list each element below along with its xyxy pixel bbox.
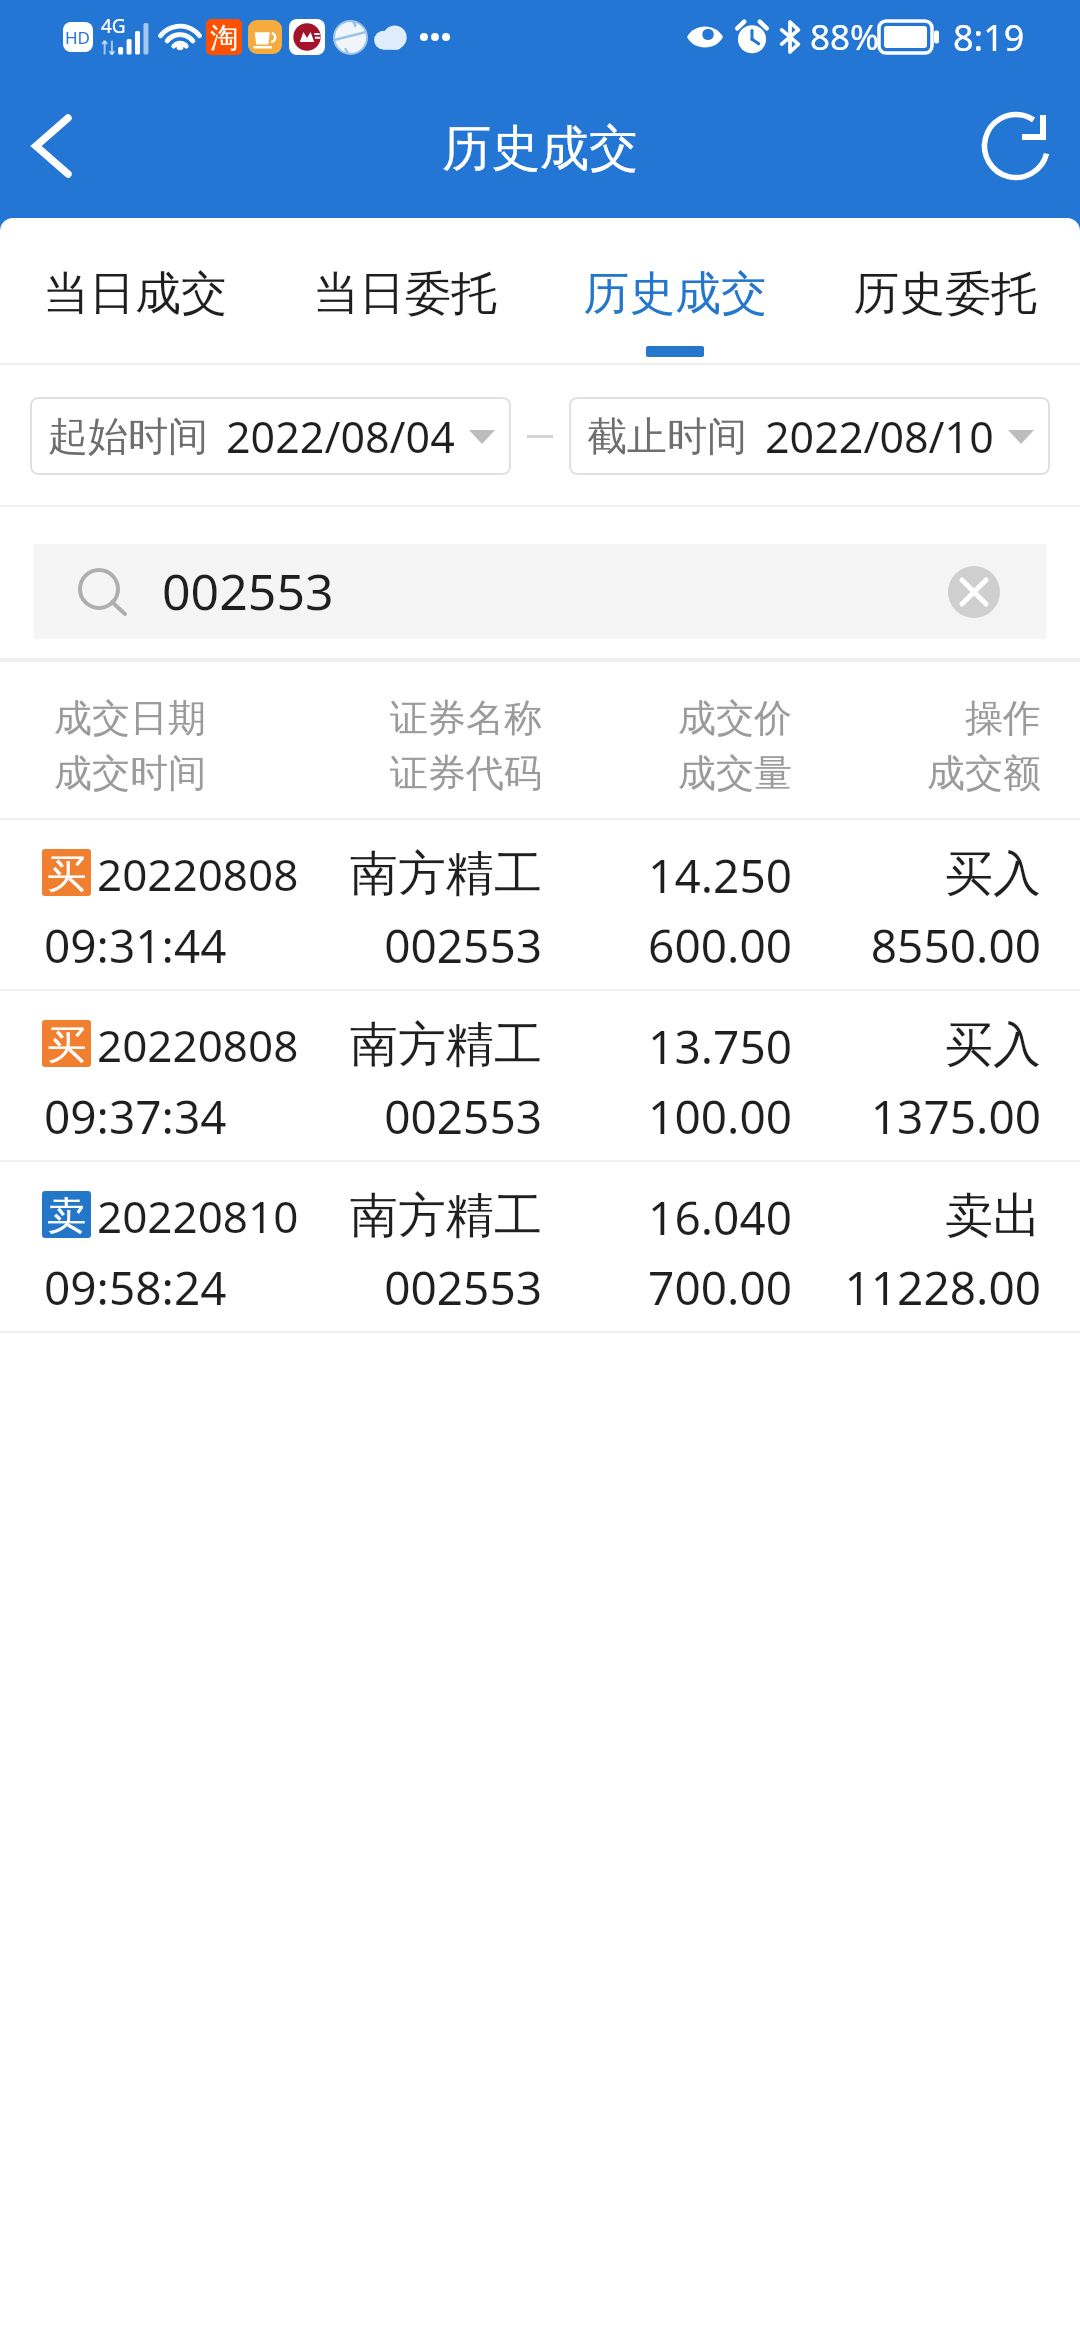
button[interactable]: 卖 (0, 1160, 1080, 1331)
staticText: HD (65, 26, 91, 49)
button[interactable]: 历史委托 (810, 218, 1080, 365)
staticText: 100.00 (472, 1085, 792, 1148)
staticText: 历史成交 (583, 265, 767, 323)
staticText: 13.750 (472, 1015, 792, 1078)
button[interactable]: 002553 (34, 544, 1046, 639)
staticText: 当日委托 (313, 265, 497, 323)
staticText: 历史委托 (853, 265, 1037, 323)
staticText: 成交日期 (54, 694, 206, 742)
staticText: 1375.00 (721, 1085, 1041, 1148)
staticText: 淘 (210, 20, 238, 55)
staticText: 09:37:34 (44, 1085, 227, 1148)
staticText: 600.00 (472, 914, 792, 977)
staticText: 买 (47, 1020, 86, 1067)
staticText: 证券代码 (222, 749, 542, 797)
staticText: 8:19 (953, 13, 1025, 62)
staticText: 002553 (222, 914, 542, 977)
button[interactable]: 当日成交 (0, 218, 270, 365)
staticText: 操作 (721, 694, 1041, 742)
button[interactable]: 买 (0, 818, 1080, 989)
staticText: 历史成交 (442, 118, 638, 180)
staticText: 当日成交 (43, 265, 227, 323)
staticText: 14.250 (472, 844, 792, 907)
staticText: 成交时间 (54, 749, 206, 797)
staticText: 4G (101, 13, 126, 39)
staticText: 起始时间 (48, 411, 208, 461)
button[interactable]: Refresh (966, 96, 1066, 196)
staticText: 700.00 (472, 1256, 792, 1319)
staticText: 卖 (47, 1191, 86, 1238)
staticText: 证券名称 (222, 694, 542, 742)
staticText: 成交价 (472, 694, 792, 742)
staticText: 11228.00 (721, 1256, 1041, 1319)
staticText: 买入 (721, 844, 1041, 904)
staticText: 20220810 (97, 1186, 299, 1246)
staticText: 16.040 (472, 1186, 792, 1249)
staticText: 8550.00 (721, 914, 1041, 977)
button[interactable]: 起始时间 (30, 397, 511, 475)
staticText: 002553 (222, 1085, 542, 1148)
staticText: 002553 (162, 557, 334, 625)
staticText: 买入 (721, 1015, 1041, 1075)
button[interactable]: 历史成交 (540, 218, 810, 365)
staticText: 20220808 (97, 1015, 299, 1075)
staticText: 南方精工 (222, 1186, 542, 1246)
staticText: 88% (810, 13, 880, 61)
button[interactable]: Clear (948, 566, 1000, 618)
staticText: 成交额 (721, 749, 1041, 797)
button[interactable]: Back (2, 96, 102, 196)
button[interactable]: 当日委托 (270, 218, 540, 365)
button[interactable]: 买 (0, 989, 1080, 1160)
staticText: 09:31:44 (44, 914, 227, 977)
staticText: 截止时间 (587, 411, 747, 461)
staticText: 成交量 (472, 749, 792, 797)
staticText: 2022/08/04 (226, 407, 455, 466)
staticText: 2022/08/10 (765, 407, 994, 466)
staticText: 买 (47, 849, 86, 896)
staticText: 09:58:24 (44, 1256, 227, 1319)
staticText: 20220808 (97, 844, 299, 904)
staticText: 南方精工 (222, 1015, 542, 1075)
staticText: 002553 (222, 1256, 542, 1319)
staticText: 南方精工 (222, 844, 542, 904)
staticText: 卖出 (721, 1186, 1041, 1246)
button[interactable]: 截止时间 (569, 397, 1050, 475)
